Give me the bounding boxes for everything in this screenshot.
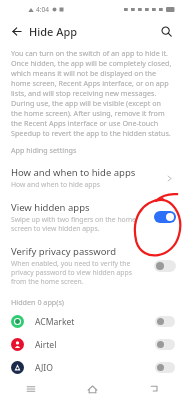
staticText: Hidden 0 app(s) [11,297,64,307]
button[interactable]: Back [6,21,26,41]
staticText: You can turn on the switch of an app to … [11,48,173,98]
staticText: View hidden apps [11,201,90,214]
staticText: Alibaba.com [35,384,155,396]
button[interactable]: Home [62,378,123,400]
button[interactable]: ACMarket [0,310,184,333]
button[interactable]: AJIO [0,356,184,379]
button[interactable]: Alibaba.com [0,379,184,400]
staticText: When enabled, you need to verify the pri… [11,259,148,286]
button[interactable]: How and when to hide apps [0,160,184,195]
button[interactable]: Toggle off [155,316,175,327]
other: Open [162,171,176,185]
staticText: ACMarket [35,316,155,328]
button[interactable]: Toggle off [155,362,175,373]
staticText: During use, the app will be visible (exc… [11,98,173,138]
button[interactable]: Verify privacy password [0,239,184,292]
staticText: 4:04 [36,5,49,14]
button[interactable]: Back [123,378,184,400]
button[interactable]: Toggle off [154,260,176,272]
staticText: Verify privacy password [11,245,117,258]
button[interactable]: View hidden apps [0,195,184,239]
staticText: Swipe up with two fingers on the home sc… [11,215,148,233]
staticText: App hiding settings [11,145,77,155]
staticText: AJIO [35,362,155,374]
staticText: How and when to hide apps [11,180,100,189]
button[interactable]: Toggle off [155,384,175,395]
button[interactable]: Toggle off [155,339,175,350]
button[interactable]: Airtel [0,333,184,356]
staticText: Hide App [29,24,78,39]
button[interactable]: Search [156,21,176,41]
button[interactable]: Recent apps [0,378,62,400]
staticText: Airtel [35,339,155,351]
button[interactable]: Toggle on [154,211,176,223]
staticText: How and when to hide apps [11,166,136,179]
